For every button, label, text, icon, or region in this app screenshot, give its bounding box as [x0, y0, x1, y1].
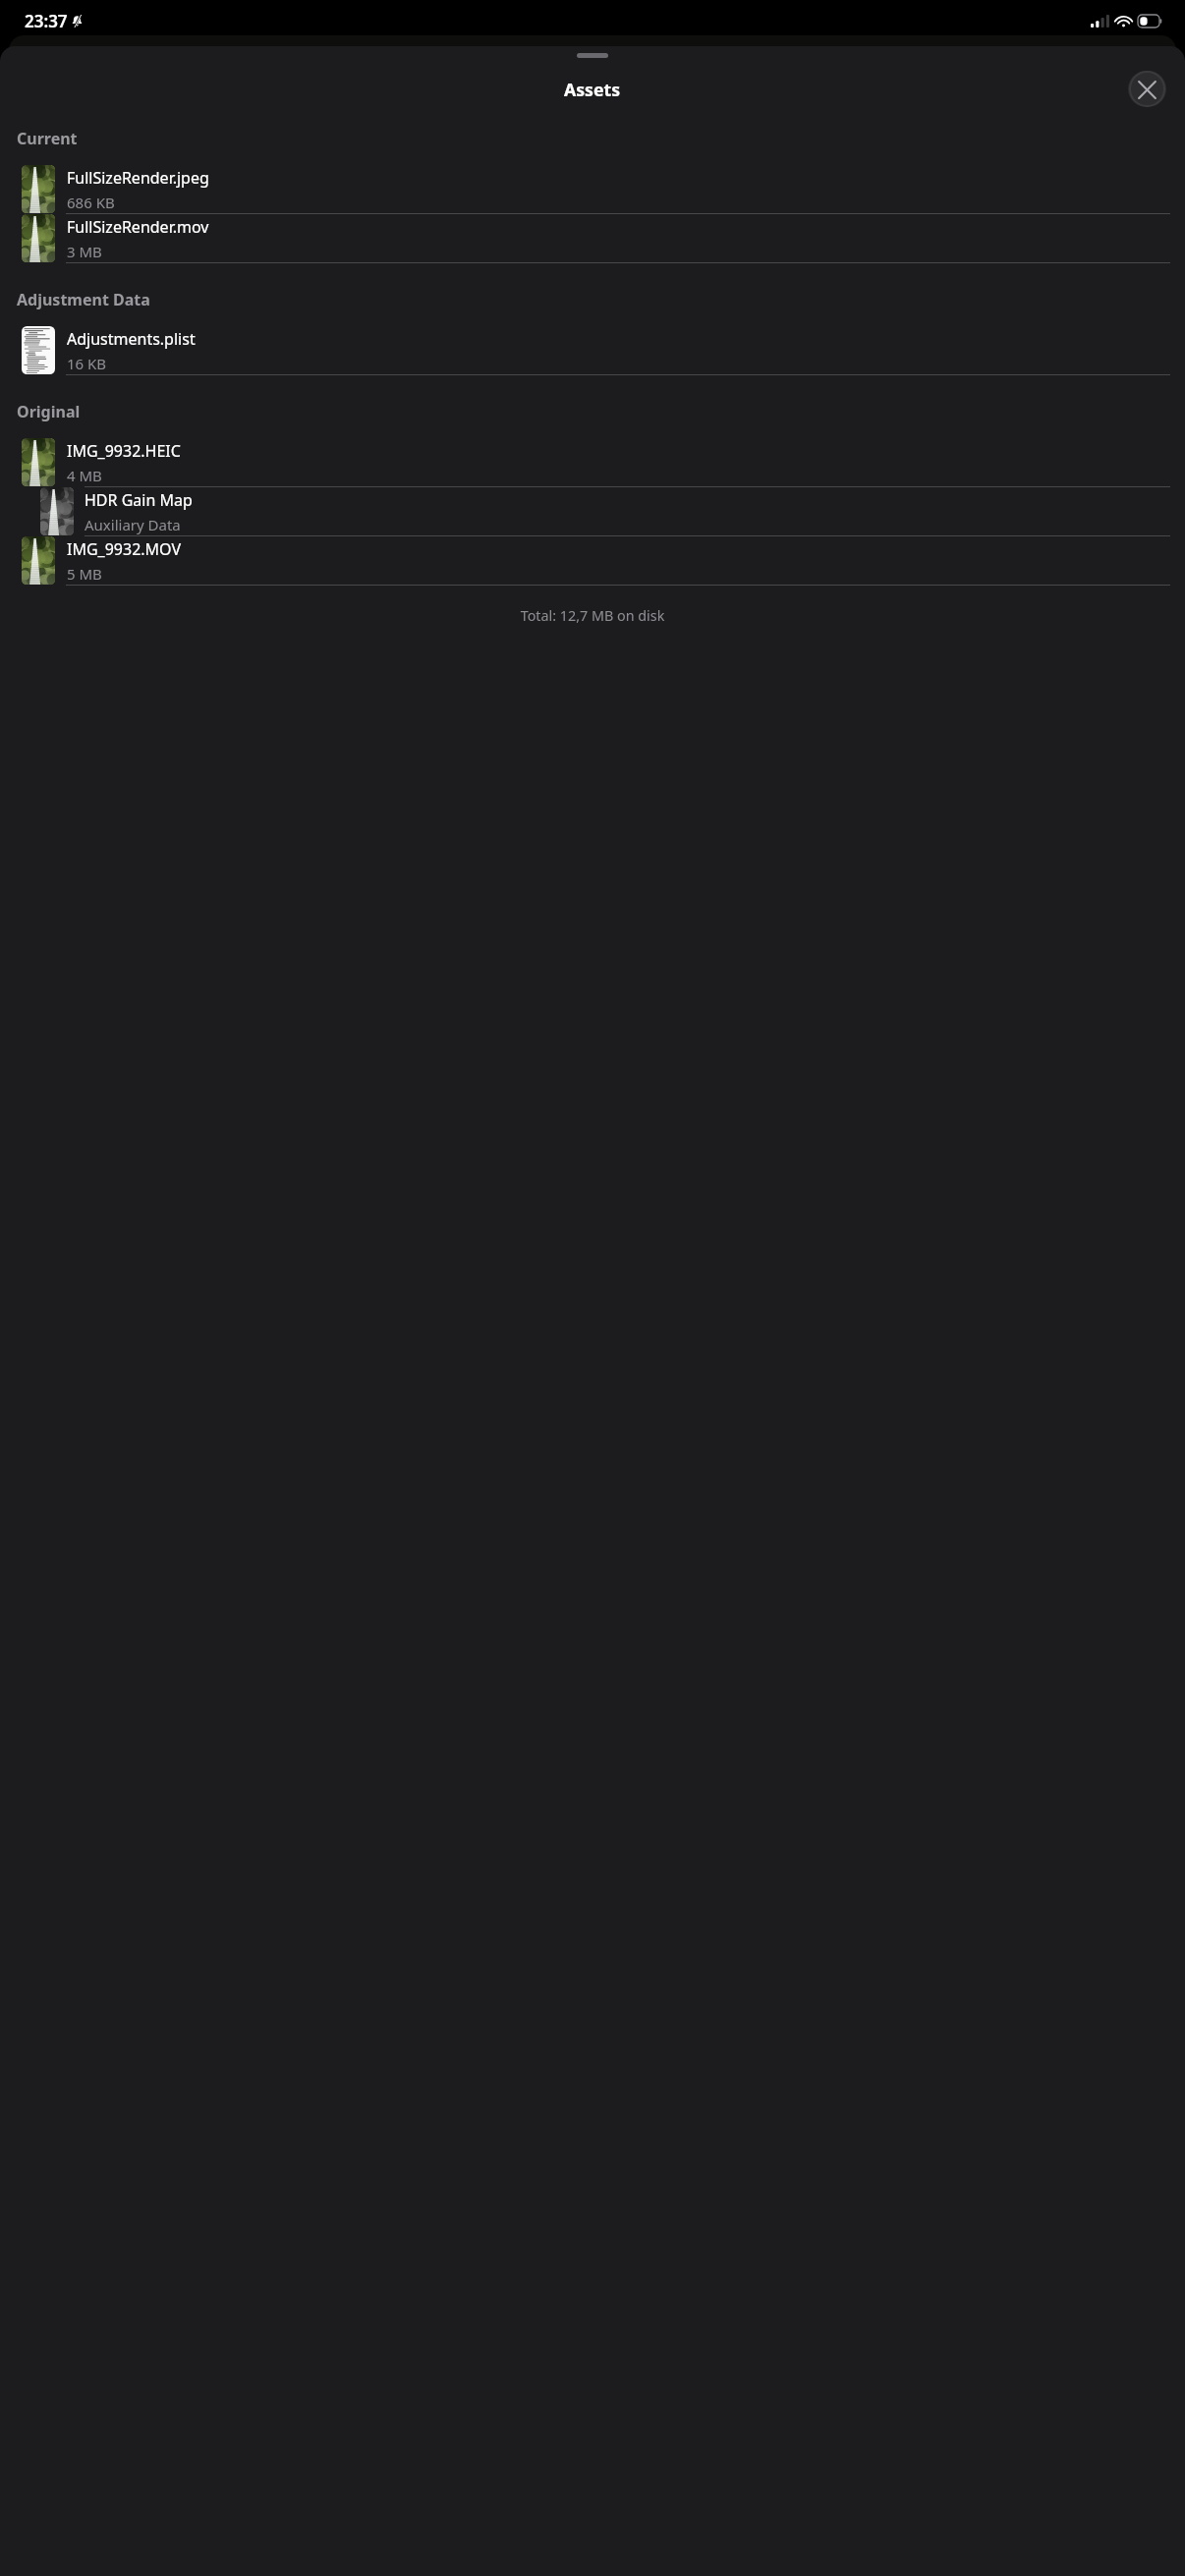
staticText: 3 MB — [67, 242, 102, 261]
staticText: Auxiliary Data — [85, 515, 181, 534]
staticText: IMG_9932.MOV — [67, 538, 182, 560]
staticText: Assets — [564, 78, 621, 101]
staticText: HDR Gain Map — [85, 489, 193, 511]
staticText: 4 MB — [67, 466, 102, 485]
button[interactable]: FullSizeRender.jpeg — [0, 165, 1185, 213]
staticText: Total: 12,7 MB on disk — [0, 606, 1185, 626]
button[interactable]: Close — [1128, 71, 1166, 107]
staticText: FullSizeRender.jpeg — [67, 167, 209, 189]
staticText: 16 KB — [67, 354, 107, 373]
staticText: IMG_9932.HEIC — [67, 440, 181, 462]
staticText: 5 MB — [67, 564, 102, 584]
staticText: 23:37 — [25, 10, 68, 32]
staticText: Adjustments.plist — [67, 328, 196, 350]
staticText: Current — [17, 128, 78, 149]
staticText: FullSizeRender.mov — [67, 216, 209, 238]
button[interactable]: HDR Gain Map — [0, 487, 1185, 535]
button[interactable]: FullSizeRender.mov — [0, 214, 1185, 262]
button[interactable]: Adjustments.plist — [0, 326, 1185, 374]
staticText: Adjustment Data — [17, 289, 150, 310]
staticText: 686 KB — [67, 193, 115, 212]
button[interactable]: IMG_9932.HEIC — [0, 438, 1185, 486]
button[interactable]: IMG_9932.MOV — [0, 536, 1185, 585]
staticText: Original — [17, 401, 81, 422]
